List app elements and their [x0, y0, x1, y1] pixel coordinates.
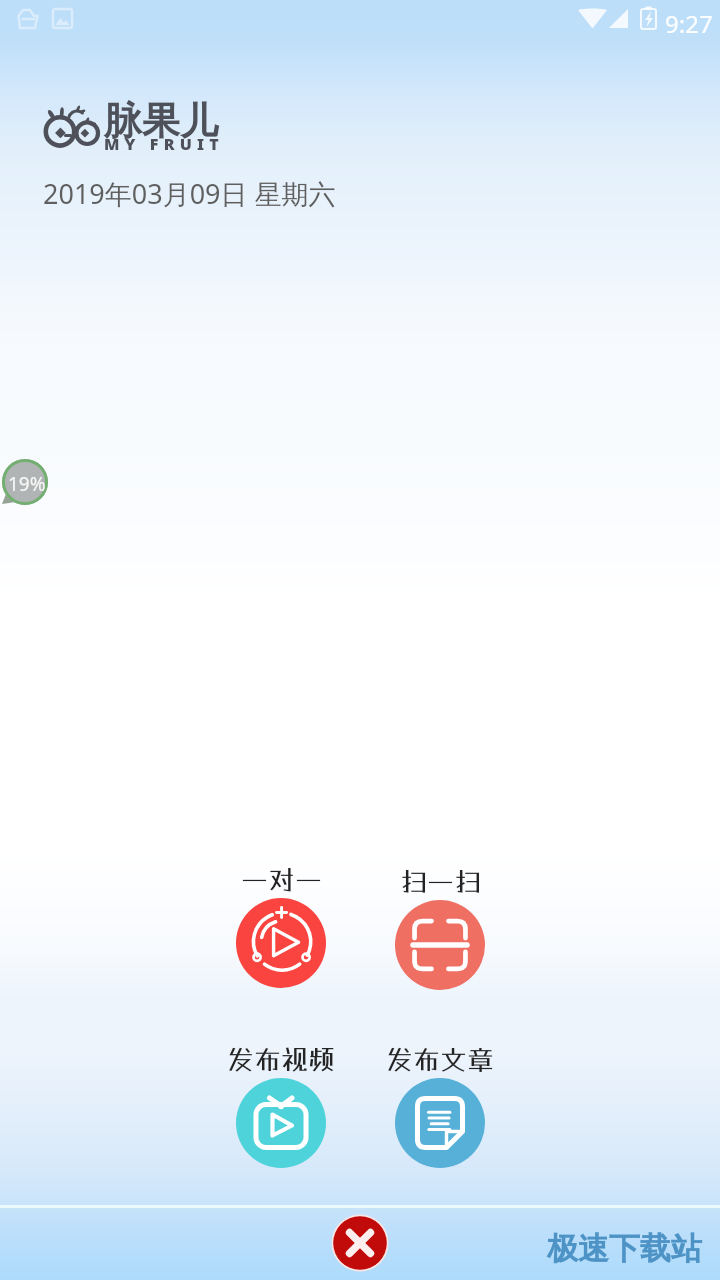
button[interactable]: Publish video: [206, 1043, 356, 1168]
button[interactable]: One on one video call: [206, 863, 356, 988]
staticText: 9:27: [665, 7, 713, 40]
staticText: 脉果儿: [104, 97, 218, 145]
staticText: 扫一扫: [400, 865, 481, 897]
staticText: 发布文章: [386, 1043, 494, 1075]
staticText: MY FRUIT: [104, 133, 224, 155]
button[interactable]: Publish article: [365, 1043, 515, 1168]
staticText: 19%: [8, 471, 46, 497]
staticText: 发布视频: [227, 1043, 335, 1075]
button[interactable]: Close: [331, 1214, 389, 1272]
staticText: 一对一: [241, 863, 322, 895]
button[interactable]: Scan QR code: [365, 865, 515, 990]
staticText: 2019年03月09日 星期六: [43, 175, 336, 212]
staticText: 极速下载站: [547, 1229, 702, 1268]
